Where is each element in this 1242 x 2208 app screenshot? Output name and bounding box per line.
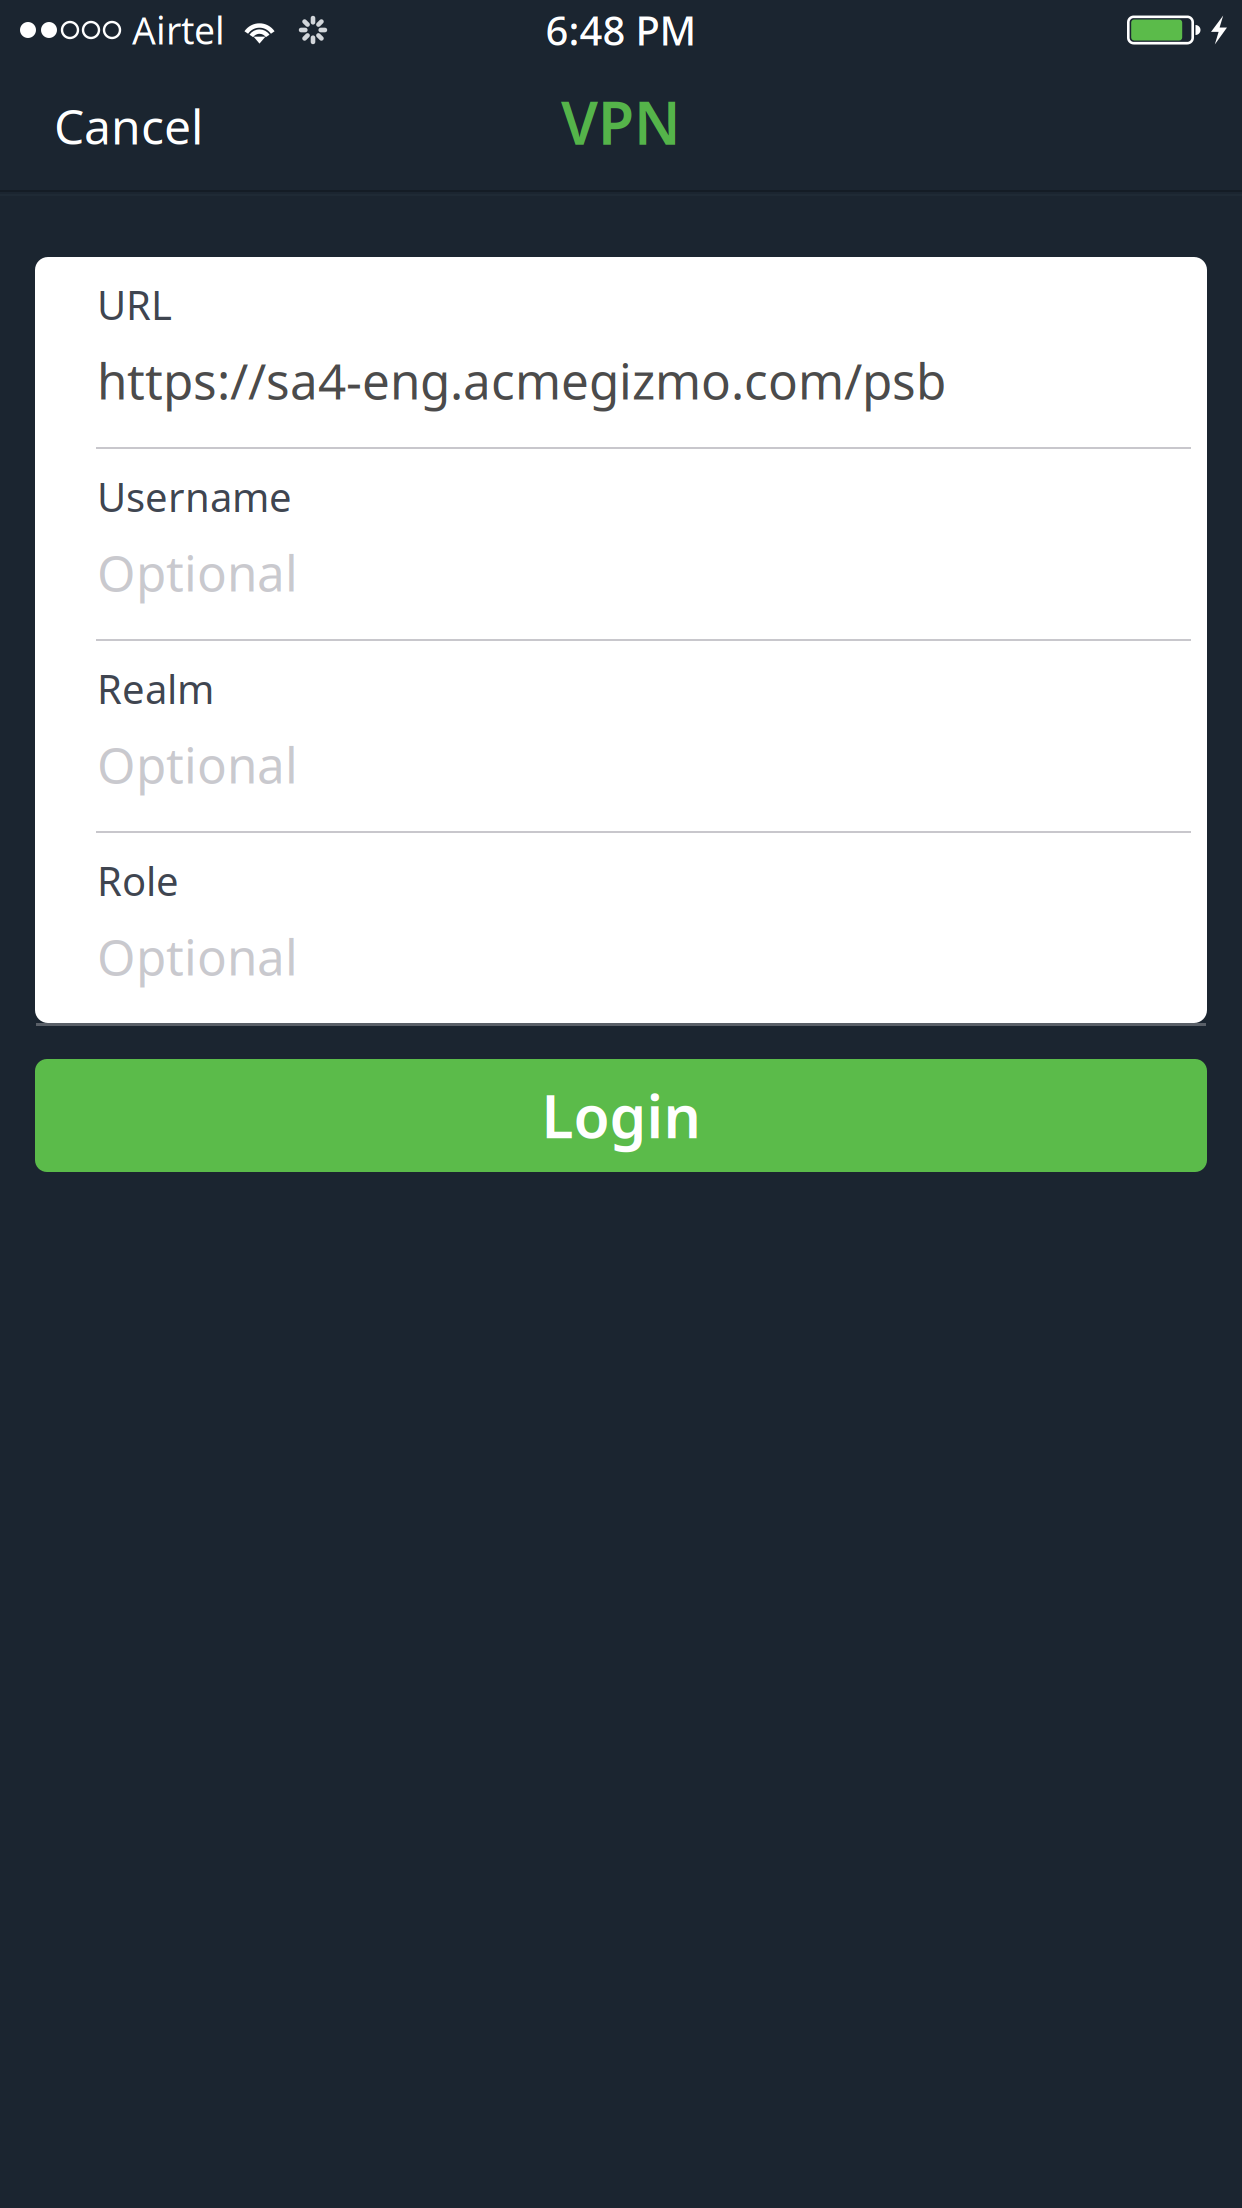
staticText: Optional [97, 923, 298, 989]
button[interactable]: URL [35, 257, 1207, 447]
button[interactable]: Login [35, 1059, 1207, 1172]
button[interactable]: Role [35, 833, 1207, 1023]
staticText: Cancel [54, 94, 203, 158]
button[interactable]: Username [35, 449, 1207, 639]
staticText: Login [541, 1076, 700, 1154]
staticText: Role [97, 854, 179, 907]
staticText: 6:48 PM [545, 3, 696, 56]
staticText: VPN [561, 83, 681, 161]
staticText: https://sa4-eng.acmegizmo.com/psb [97, 347, 946, 413]
button[interactable]: Cancel [0, 72, 233, 178]
staticText: Airtel [132, 5, 225, 55]
staticText: Optional [97, 731, 298, 797]
button[interactable]: Realm [35, 641, 1207, 831]
staticText: Username [97, 470, 292, 523]
staticText: Realm [97, 662, 214, 715]
staticText: URL [97, 278, 172, 331]
staticText: Optional [97, 539, 298, 605]
